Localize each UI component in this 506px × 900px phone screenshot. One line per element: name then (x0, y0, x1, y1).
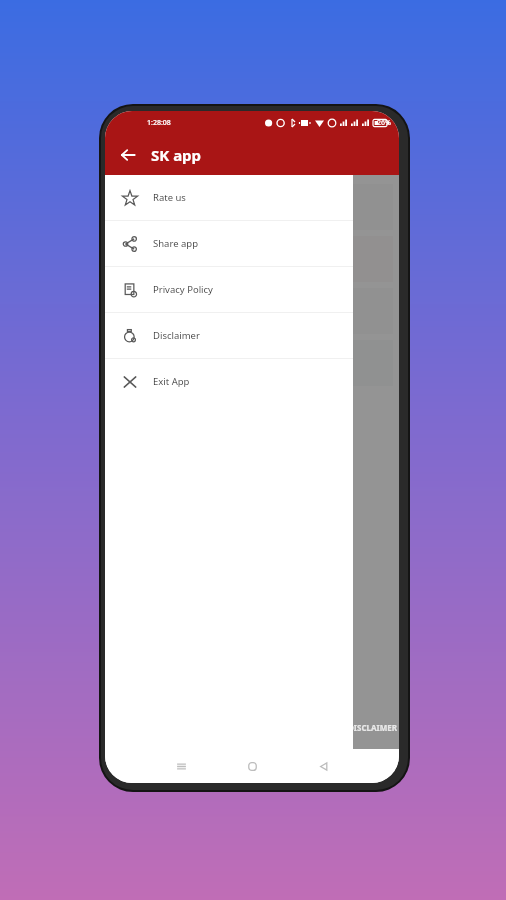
button[interactable]: Exit App (105, 359, 353, 404)
staticText: DISCLAIMER (348, 722, 397, 733)
staticText: 1:28:08 (147, 118, 171, 128)
staticText: SK app (151, 145, 202, 165)
button[interactable]: Privacy Policy (105, 267, 353, 312)
button[interactable]: Home (217, 749, 288, 783)
staticText: Rate us (153, 191, 186, 204)
staticText: Share app (153, 237, 198, 250)
button[interactable]: Rate us (105, 175, 353, 220)
button[interactable]: Recents (145, 749, 217, 783)
staticText: Exit App (153, 375, 190, 388)
button[interactable]: Share app (105, 221, 353, 266)
button[interactable]: Disclaimer (105, 313, 353, 358)
staticText: Privacy Policy (153, 283, 213, 296)
button[interactable]: Back (113, 140, 143, 170)
staticText: Disclaimer (153, 329, 200, 342)
button[interactable]: Back (288, 749, 359, 783)
staticText: 26% (377, 118, 391, 128)
